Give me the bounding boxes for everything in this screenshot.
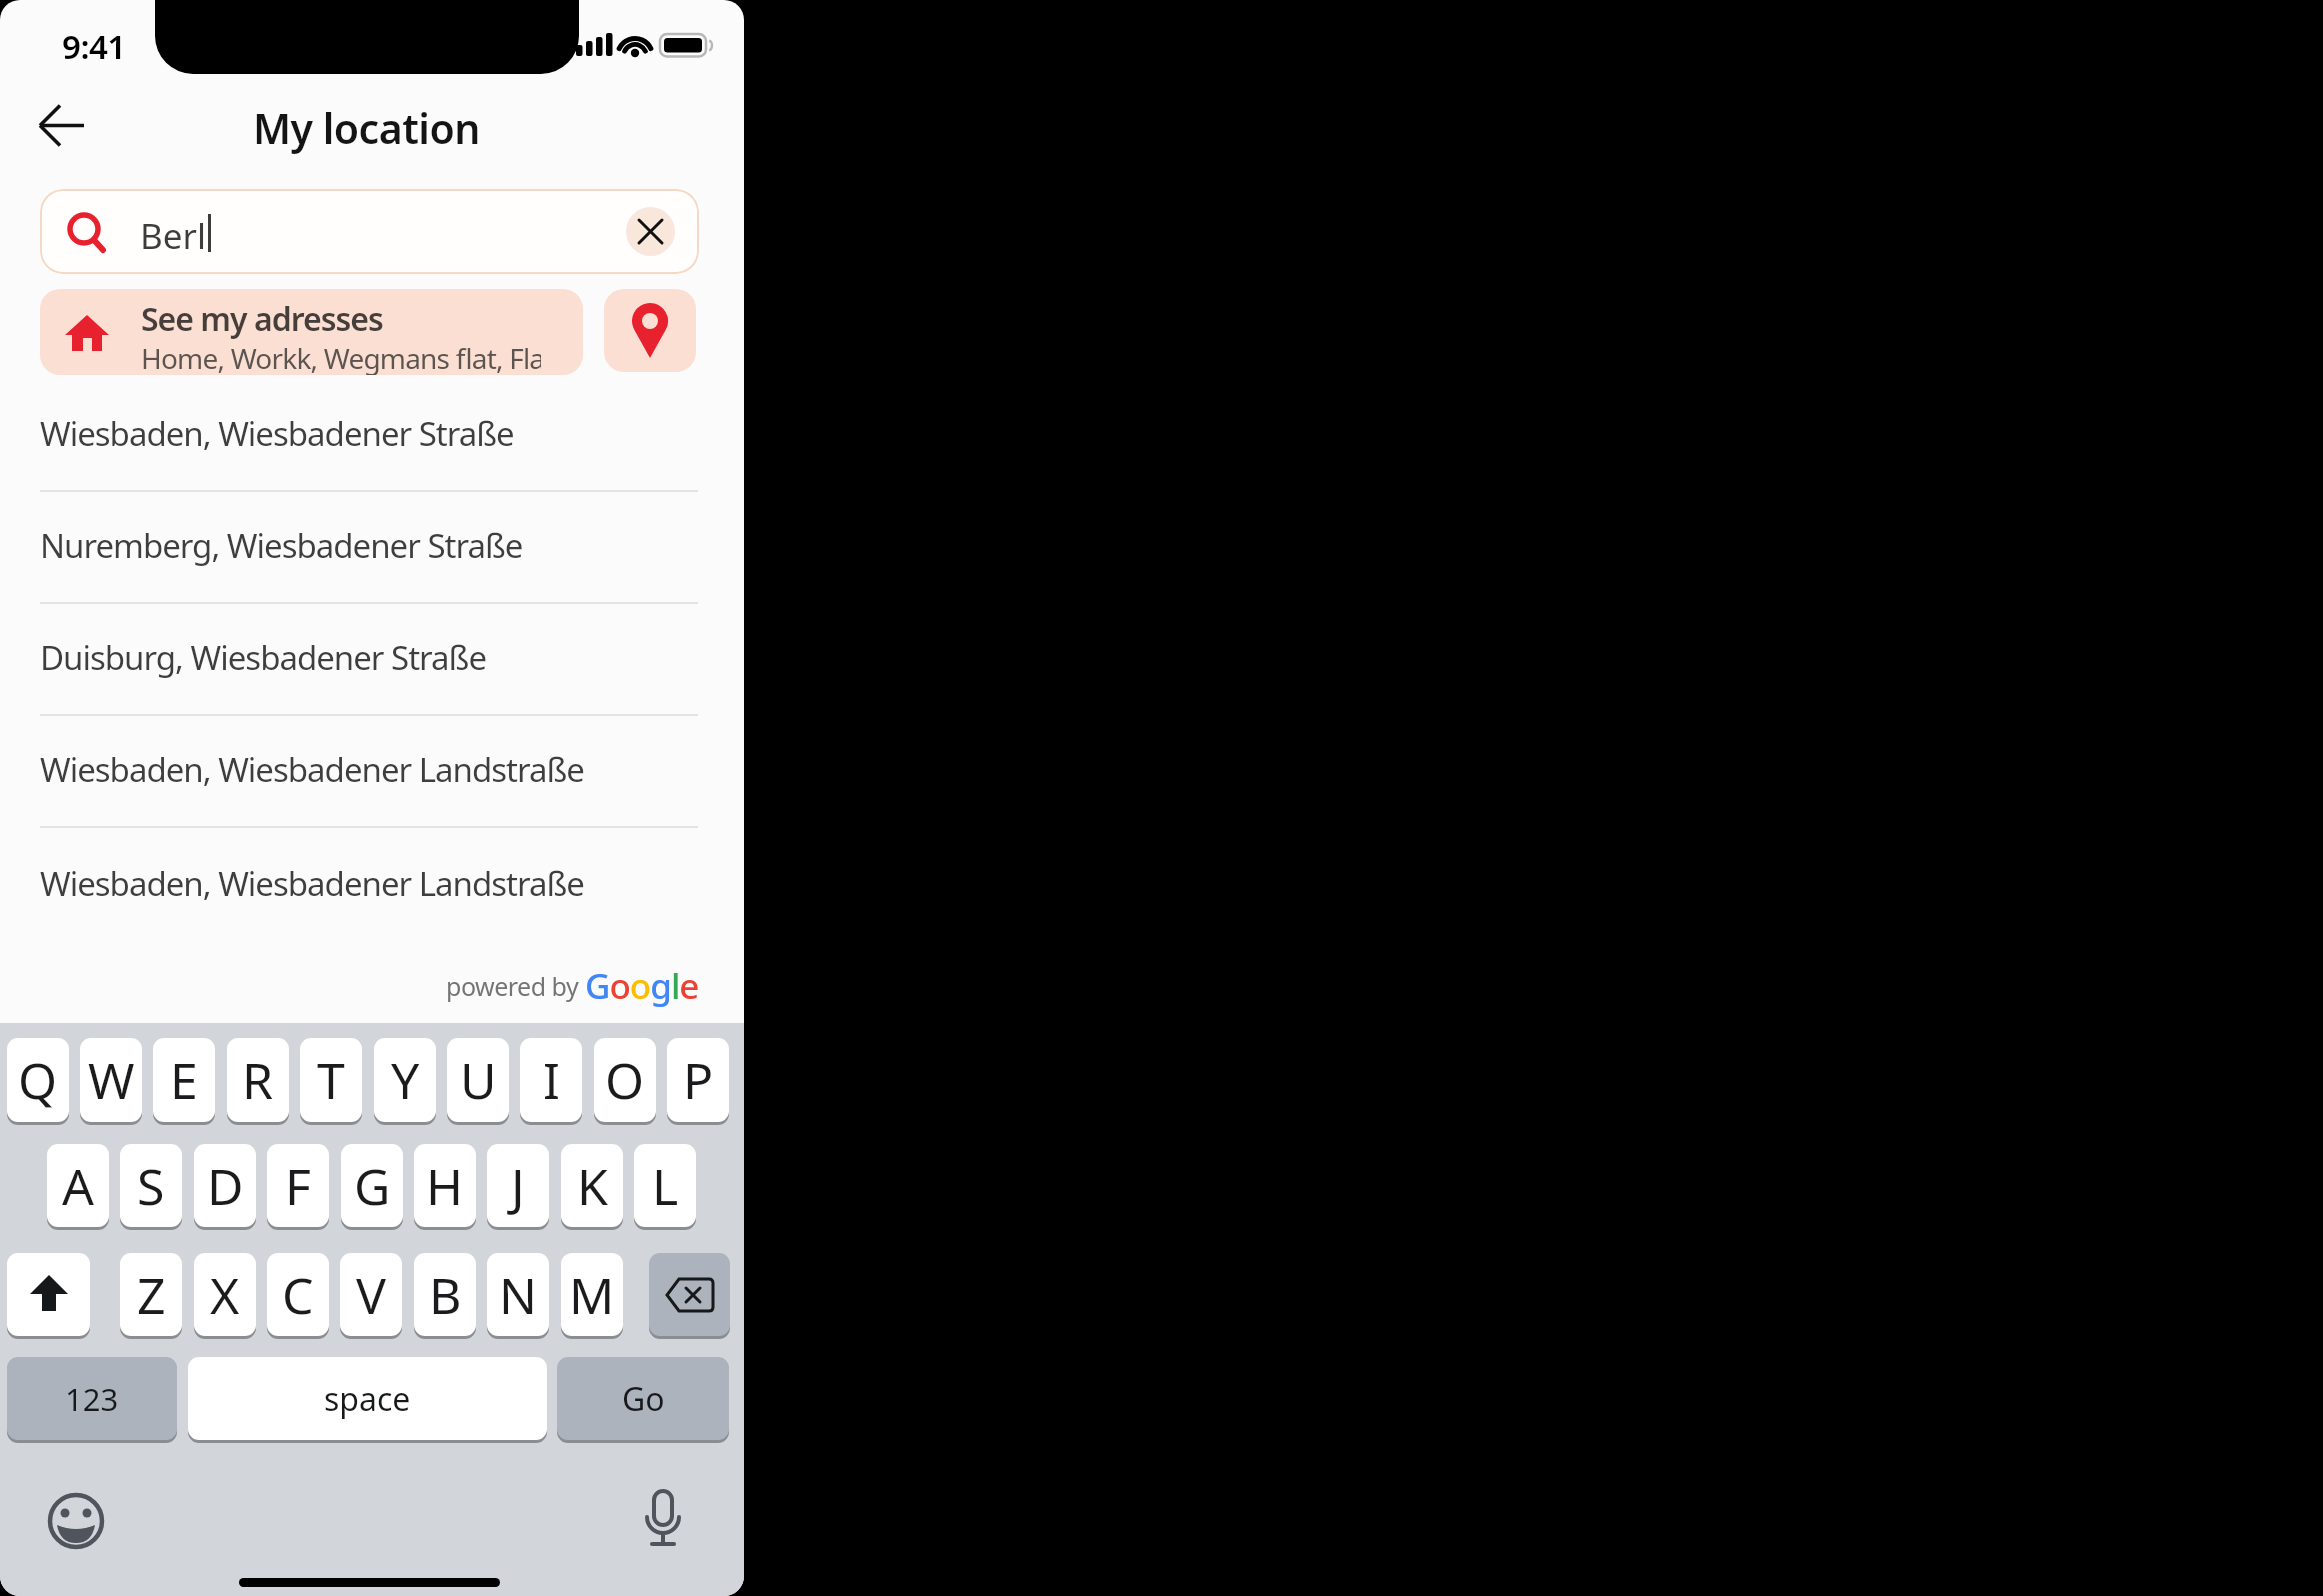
button[interactable]: Wiesbaden, Wiesbadener Straße (0, 377, 744, 489)
button[interactable]: P (667, 1038, 729, 1122)
staticText: Duisburg, Wiesbadener Straße (40, 635, 487, 680)
button[interactable]: G (341, 1144, 403, 1227)
button[interactable] (633, 1487, 693, 1559)
button[interactable]: See my adresses (40, 289, 583, 375)
button[interactable]: A (47, 1144, 109, 1227)
button[interactable]: W (80, 1038, 142, 1122)
button[interactable]: T (300, 1038, 362, 1122)
staticText: powered by (446, 969, 585, 1003)
button[interactable] (604, 289, 696, 372)
staticText: K (577, 1152, 608, 1220)
button[interactable]: Nuremberg, Wiesbadener Straße (0, 489, 744, 601)
button[interactable]: X (194, 1253, 256, 1336)
staticText: Go (622, 1377, 665, 1421)
button[interactable]: Z (120, 1253, 182, 1336)
button[interactable]: B (414, 1253, 476, 1336)
staticText: Home, Workk, Wegmans flat, Flat 2 ... (141, 339, 541, 375)
button[interactable] (7, 1253, 90, 1336)
button[interactable]: I (520, 1038, 582, 1122)
staticText: N (499, 1261, 537, 1329)
staticText: Nuremberg, Wiesbadener Straße (40, 523, 523, 568)
staticText: Berl (140, 212, 206, 260)
button[interactable]: Berl (40, 189, 699, 274)
button[interactable]: U (447, 1038, 509, 1122)
button[interactable] (30, 97, 94, 153)
button[interactable]: S (120, 1144, 182, 1227)
staticText: G (354, 1152, 391, 1220)
staticText: W (88, 1046, 135, 1114)
staticText: Wiesbaden, Wiesbadener Landstraße (40, 747, 584, 792)
staticText: Wiesbaden, Wiesbadener Straße (40, 411, 514, 456)
staticText: See my adresses (141, 297, 383, 341)
button[interactable]: O (594, 1038, 656, 1122)
button[interactable]: J (487, 1144, 549, 1227)
button[interactable] (649, 1253, 730, 1336)
button[interactable]: H (414, 1144, 476, 1227)
button[interactable]: E (153, 1038, 215, 1122)
button[interactable]: space (188, 1357, 547, 1440)
staticText: Q (18, 1046, 58, 1114)
button[interactable]: F (267, 1144, 329, 1227)
staticText: P (683, 1046, 714, 1114)
button[interactable] (42, 1487, 110, 1555)
staticText: H (426, 1152, 464, 1220)
button[interactable]: Y (374, 1038, 436, 1122)
button[interactable]: Wiesbaden, Wiesbadener Landstraße (0, 713, 744, 825)
staticText: F (285, 1152, 311, 1220)
staticText: space (324, 1377, 411, 1421)
button[interactable]: Wiesbaden, Wiesbadener Landstraße (0, 827, 744, 939)
button[interactable]: V (340, 1253, 402, 1336)
button[interactable] (626, 207, 675, 256)
button[interactable]: L (634, 1144, 696, 1227)
staticText: J (511, 1152, 525, 1220)
staticText: A (62, 1152, 94, 1220)
staticText: M (569, 1261, 615, 1329)
button[interactable]: Duisburg, Wiesbadener Straße (0, 601, 744, 713)
staticText: O (605, 1046, 645, 1114)
staticText: X (210, 1261, 240, 1329)
staticText: My location (253, 100, 480, 156)
button[interactable]: Q (7, 1038, 69, 1122)
button[interactable]: C (267, 1253, 329, 1336)
button[interactable]: Go (557, 1357, 729, 1440)
staticText: T (317, 1046, 345, 1114)
staticText: R (242, 1046, 274, 1114)
staticText: 9:41 (62, 24, 126, 69)
staticText: E (170, 1046, 198, 1114)
button[interactable]: R (227, 1038, 289, 1122)
button[interactable]: K (561, 1144, 623, 1227)
staticText: Y (391, 1046, 420, 1114)
staticText: D (207, 1152, 244, 1220)
staticText: Google (585, 962, 699, 1010)
button[interactable]: D (194, 1144, 256, 1227)
staticText: U (460, 1046, 497, 1114)
staticText: Z (137, 1261, 166, 1329)
button[interactable]: N (487, 1253, 549, 1336)
staticText: L (652, 1152, 679, 1220)
staticText: Wiesbaden, Wiesbadener Landstraße (40, 861, 584, 906)
staticText: C (282, 1261, 314, 1329)
staticText: S (137, 1152, 165, 1220)
staticText: I (543, 1046, 560, 1114)
staticText: 123 (65, 1378, 119, 1420)
button[interactable]: M (561, 1253, 623, 1336)
staticText: V (356, 1261, 386, 1329)
staticText: B (429, 1261, 462, 1329)
button[interactable]: 123 (7, 1357, 177, 1440)
